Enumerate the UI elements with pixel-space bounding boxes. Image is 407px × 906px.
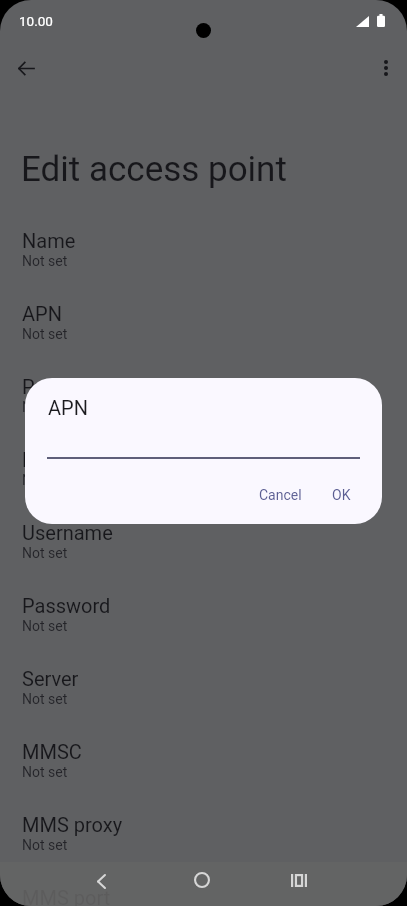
staticText: MMS proxy <box>22 813 123 836</box>
button[interactable]: Proxy <box>0 368 407 441</box>
staticText: Port <box>22 448 60 471</box>
staticText: Proxy <box>22 375 72 398</box>
button[interactable]: Back <box>77 859 125 903</box>
button[interactable]: Cancel <box>248 479 312 511</box>
staticText: Password <box>22 594 111 617</box>
button[interactable]: MMSC <box>0 733 407 806</box>
staticText: Not set <box>22 837 68 853</box>
button[interactable]: Password <box>0 587 407 660</box>
staticText: Not set <box>22 545 68 561</box>
staticText: Not set <box>22 253 68 269</box>
button[interactable]: OK <box>320 479 362 511</box>
staticText: Not set <box>22 472 68 488</box>
staticText: MMSC <box>22 740 82 763</box>
staticText: OK <box>332 487 351 503</box>
staticText: Not set <box>22 764 68 780</box>
button[interactable]: Port <box>0 441 407 514</box>
button[interactable]: Name <box>0 222 407 295</box>
button[interactable]: Server <box>0 660 407 733</box>
button[interactable]: Navigate up <box>7 49 45 87</box>
button[interactable]: APN <box>0 295 407 368</box>
staticText: Not set <box>22 399 68 415</box>
staticText: Not set <box>22 691 68 707</box>
staticText: 10.00 <box>19 13 53 29</box>
button[interactable]: Username <box>0 514 407 587</box>
staticText: Not set <box>22 618 68 634</box>
staticText: APN <box>22 302 62 325</box>
staticText: Name <box>22 229 76 252</box>
staticText: APN <box>48 396 88 419</box>
staticText: Server <box>22 667 79 690</box>
button[interactable]: More options <box>367 49 405 87</box>
button[interactable]: MMS proxy <box>0 806 407 879</box>
staticText: Cancel <box>259 487 302 503</box>
staticText: MMS port <box>22 886 111 906</box>
button[interactable]: Home <box>178 858 226 902</box>
staticText: Username <box>22 521 113 544</box>
button[interactable]: Recent apps <box>275 858 323 902</box>
staticText: Not set <box>22 326 68 342</box>
staticText: Edit access point <box>21 149 287 190</box>
button[interactable]: MMS port <box>0 879 407 906</box>
